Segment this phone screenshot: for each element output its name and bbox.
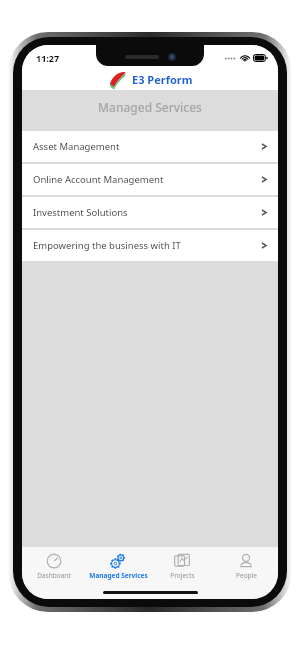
staticText: People (236, 571, 257, 580)
staticText: E3 Perform (132, 72, 193, 87)
button[interactable]: Investment Solutions (22, 197, 278, 228)
button[interactable]: Empowering the business with IT (22, 230, 278, 261)
staticText: Investment Solutions (33, 206, 261, 219)
staticText: Online Account Management (33, 173, 261, 186)
button[interactable]: Dashboard (22, 547, 86, 585)
button[interactable]: Online Account Management (22, 164, 278, 195)
button[interactable]: Asset Management (22, 131, 278, 162)
staticText: Dashboard (37, 571, 71, 580)
button[interactable]: Managed Services (86, 547, 150, 585)
staticText: 11:27 (36, 52, 60, 64)
button[interactable]: People (214, 547, 278, 585)
button[interactable]: Projects (150, 547, 214, 585)
staticText: Empowering the business with IT (33, 239, 261, 252)
staticText: Managed Services (89, 571, 148, 580)
staticText: Managed Services (98, 99, 202, 115)
staticText: Projects (170, 571, 195, 580)
staticText: Asset Management (33, 140, 261, 153)
